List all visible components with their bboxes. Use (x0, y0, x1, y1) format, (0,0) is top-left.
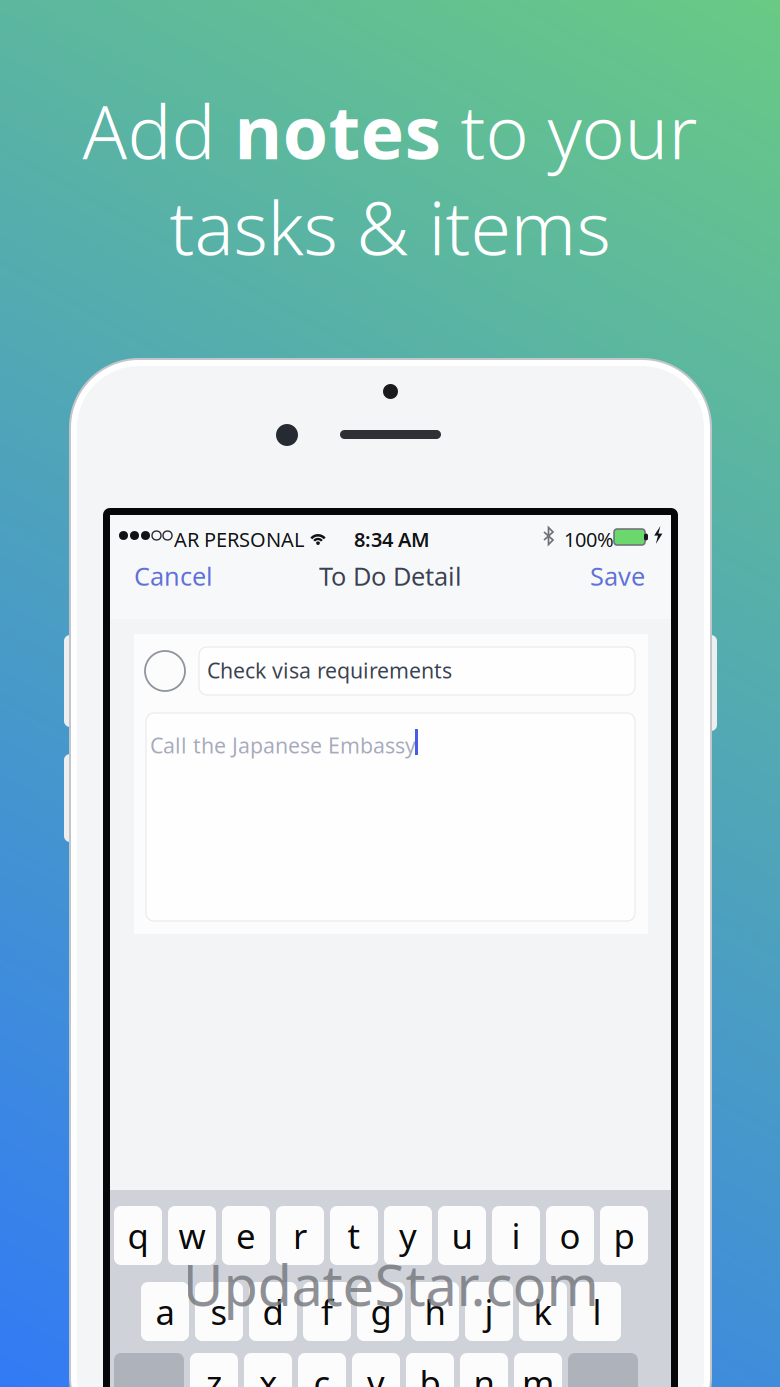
staticText: l (592, 1288, 601, 1334)
button[interactable]: f (303, 1282, 351, 1341)
staticText: AR PERSONAL (174, 526, 304, 553)
staticText: u (451, 1212, 472, 1258)
button[interactable]: z (190, 1353, 238, 1387)
button[interactable]: a (141, 1282, 189, 1341)
button[interactable]: s (195, 1282, 243, 1341)
staticText: z (206, 1359, 222, 1387)
button[interactable]: e (222, 1206, 270, 1265)
staticText: y (399, 1212, 417, 1258)
staticText: tasks & items (169, 178, 610, 275)
staticText: t (347, 1212, 360, 1258)
button[interactable]: Save (555, 553, 645, 599)
staticText: m (522, 1359, 554, 1387)
staticText: p (613, 1212, 634, 1258)
staticText: a (155, 1288, 174, 1334)
button[interactable]: t (330, 1206, 378, 1265)
button[interactable]: g (357, 1282, 405, 1341)
button[interactable]: n (460, 1353, 508, 1387)
staticText: Check visa requirements (207, 656, 452, 684)
staticText: c (313, 1359, 330, 1387)
staticText: w (178, 1212, 205, 1258)
staticText: UpdateStar.com (182, 1247, 598, 1321)
staticText: Add notes to your (82, 82, 697, 179)
button[interactable]: u (438, 1206, 486, 1265)
staticText: d (262, 1288, 283, 1334)
button[interactable]: i (492, 1206, 540, 1265)
staticText: 8:34 AM (354, 526, 430, 553)
button[interactable]: x (244, 1353, 292, 1387)
staticText: Cancel (134, 559, 213, 593)
button[interactable]: o (546, 1206, 594, 1265)
staticText: q (127, 1212, 148, 1258)
staticText: i (511, 1212, 520, 1258)
staticText: Save (590, 559, 645, 593)
button[interactable]: b (406, 1353, 454, 1387)
staticText: j (484, 1288, 493, 1334)
staticText: f (321, 1288, 333, 1334)
staticText: b (419, 1359, 440, 1387)
staticText: s (210, 1288, 227, 1334)
staticText: v (367, 1359, 385, 1387)
button[interactable]: w (168, 1206, 216, 1265)
button[interactable]: r (276, 1206, 324, 1265)
staticText: o (559, 1212, 580, 1258)
staticText: g (370, 1288, 391, 1334)
button[interactable]: l (573, 1282, 621, 1341)
button[interactable]: c (298, 1353, 346, 1387)
button[interactable]: j (465, 1282, 513, 1341)
staticText: k (533, 1288, 552, 1334)
staticText: h (424, 1288, 445, 1334)
button[interactable]: d (249, 1282, 297, 1341)
button[interactable]: Cancel (134, 553, 234, 599)
staticText: e (236, 1212, 256, 1258)
staticText: Call the Japanese Embassy (150, 731, 416, 759)
staticText: n (473, 1359, 494, 1387)
button[interactable]: p (600, 1206, 648, 1265)
button[interactable]: q (114, 1206, 162, 1265)
staticText: To Do Detail (319, 559, 462, 593)
button[interactable]: v (352, 1353, 400, 1387)
button[interactable]: y (384, 1206, 432, 1265)
staticText: r (293, 1212, 307, 1258)
staticText: 100% (564, 526, 614, 553)
button[interactable]: m (514, 1353, 562, 1387)
button[interactable]: h (411, 1282, 459, 1341)
staticText: x (259, 1359, 277, 1387)
button[interactable]: k (519, 1282, 567, 1341)
